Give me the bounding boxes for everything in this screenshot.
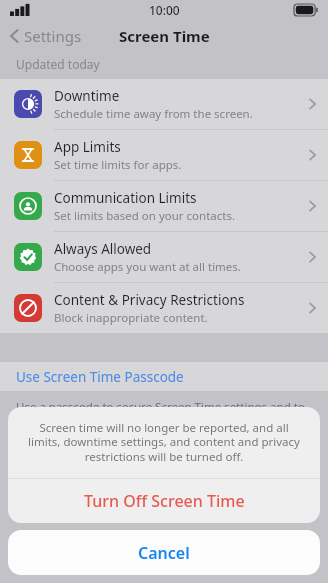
staticText: Turn Off Screen Time [84,490,245,512]
staticText: Schedule time away from the screen. [54,106,253,122]
staticText: Use a passcode to secure Screen Time set… [16,399,312,445]
staticText: App Limits [54,138,121,156]
staticText: Use Screen Time Passcode [16,368,184,386]
button[interactable]: Downtime [0,79,328,129]
staticText: Screen Time [119,26,210,46]
staticText: Set time limits for apps. [54,157,182,173]
staticText: Set limits based on your contacts. [54,208,235,224]
staticText: 10:00 [149,2,180,18]
staticText: Always Allowed [54,240,152,258]
staticText: Content & Privacy Restrictions [54,291,245,309]
button[interactable]: Settings [0,22,92,50]
button[interactable]: Use Screen Time Passcode [0,362,328,391]
staticText: Updated today [16,56,100,72]
staticText: Choose apps you want at all times. [54,259,241,275]
button[interactable]: Content & Privacy Restrictions [0,283,328,333]
staticText: Downtime [54,87,120,105]
button[interactable]: Cancel [8,530,320,575]
staticText: Block inappropriate content. [54,310,208,326]
staticText: Communication Limits [54,189,197,207]
button[interactable]: Communication Limits [0,181,328,231]
staticText: Cancel [138,542,190,564]
button[interactable]: App Limits [0,130,328,180]
button[interactable]: Always Allowed [0,232,328,282]
staticText: Settings [24,26,82,46]
staticText: Screen time will no longer be reported, … [26,420,302,465]
button[interactable]: Turn Off Screen Time [8,479,320,523]
